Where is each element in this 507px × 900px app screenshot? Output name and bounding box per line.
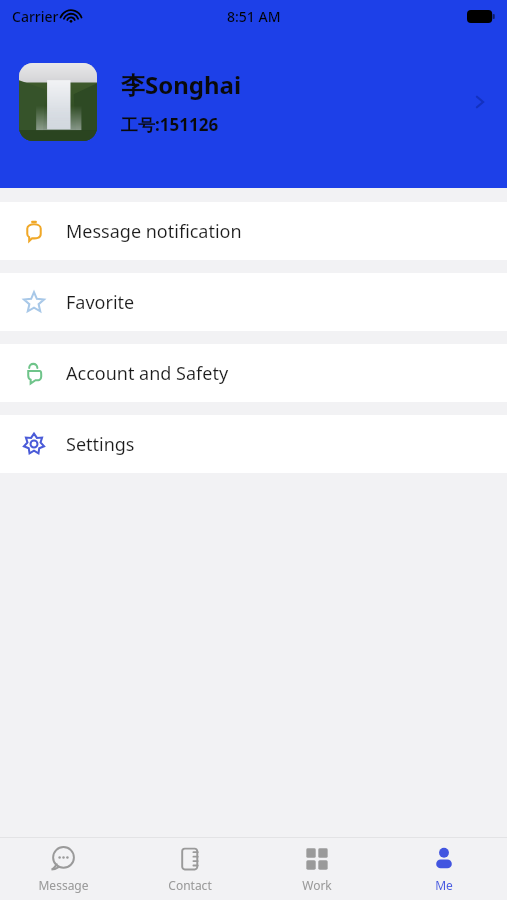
staticText: Carrier	[12, 7, 59, 26]
button[interactable]: Message notification	[0, 202, 507, 260]
button[interactable]: Favorite	[0, 273, 507, 331]
staticText: Message notification	[66, 219, 242, 244]
button[interactable]: Contact	[126, 838, 253, 900]
button[interactable]: Account and Safety	[0, 344, 507, 402]
button[interactable]: Me	[380, 838, 507, 900]
staticText: 工号:151126	[121, 113, 219, 136]
staticText: Message	[38, 877, 89, 893]
button[interactable]: Message	[0, 838, 126, 900]
staticText: Me	[435, 877, 453, 893]
staticText: Settings	[66, 432, 135, 457]
button[interactable]: 李Songhai	[0, 42, 507, 162]
button[interactable]: Settings	[0, 415, 507, 473]
staticText: Contact	[168, 877, 212, 893]
staticText: Favorite	[66, 290, 135, 315]
staticText: 李Songhai	[121, 68, 242, 101]
staticText: Work	[302, 877, 332, 893]
button[interactable]: Work	[253, 838, 380, 900]
staticText: 8:51 AM	[227, 7, 281, 26]
staticText: Account and Safety	[66, 361, 229, 386]
other: Profile details	[469, 91, 491, 113]
